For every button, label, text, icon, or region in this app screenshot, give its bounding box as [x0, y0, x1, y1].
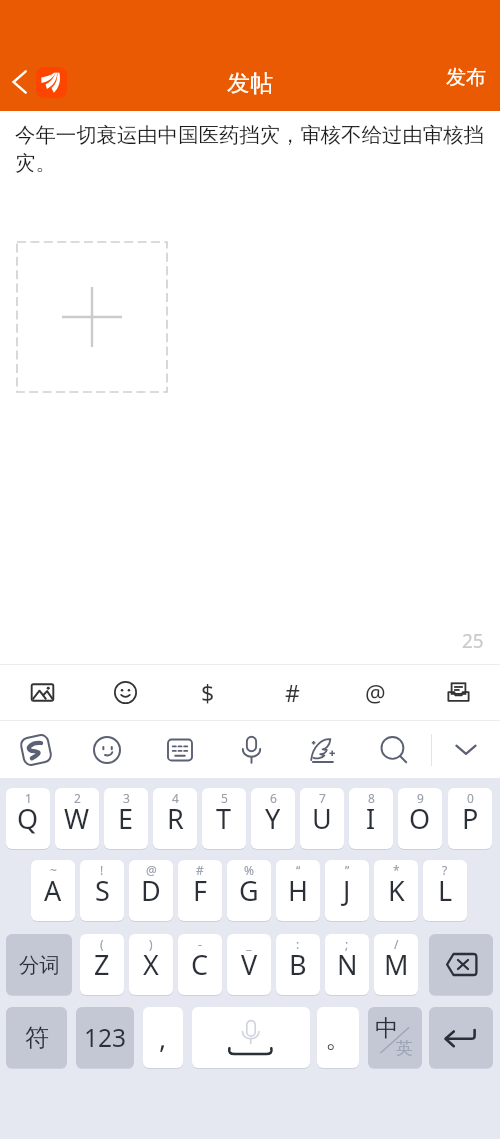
button[interactable]: 符 [6, 1007, 67, 1068]
button[interactable]: - [178, 934, 222, 995]
button[interactable]: % [227, 860, 271, 921]
button[interactable]: 5 [202, 788, 246, 849]
button[interactable]: 3 [104, 788, 148, 849]
button[interactable]: 0 [448, 788, 492, 849]
button[interactable]: App logo [36, 67, 67, 98]
staticText: M [384, 946, 409, 983]
staticText: 发布 [446, 65, 486, 90]
button[interactable]: Enter [429, 1007, 493, 1068]
staticText: P [462, 800, 479, 837]
button[interactable]: # [269, 664, 315, 721]
button[interactable]: Back [0, 61, 41, 103]
staticText: C [191, 946, 209, 983]
staticText: , [159, 1019, 167, 1056]
button[interactable]: / [374, 934, 418, 995]
staticText: * [393, 862, 400, 878]
staticText: ~ [50, 862, 57, 878]
staticText: I [366, 800, 376, 837]
staticText: U [312, 800, 332, 837]
button[interactable]: : [276, 934, 320, 995]
staticText: Q [17, 800, 39, 837]
button[interactable]: ! [80, 860, 124, 921]
button[interactable]: @ [352, 664, 398, 721]
button[interactable]: ? [423, 860, 467, 921]
button[interactable]: “ [276, 860, 320, 921]
staticText: T [216, 800, 232, 837]
button[interactable]: 123 [76, 1007, 134, 1068]
staticText: 7 [319, 790, 326, 806]
button[interactable]: Space [192, 1007, 310, 1068]
button[interactable]: 分词 [6, 934, 72, 995]
staticText: - [198, 936, 202, 952]
button[interactable]: # [178, 860, 222, 921]
button[interactable]: Hide keyboard [444, 721, 488, 778]
button[interactable]: Chinese English toggle [368, 1007, 422, 1068]
staticText: K [388, 872, 405, 909]
button[interactable]: 6 [251, 788, 295, 849]
staticText: G [239, 872, 259, 909]
button[interactable]: 7 [300, 788, 344, 849]
staticText: 4 [172, 790, 179, 806]
staticText: Y [265, 800, 281, 837]
staticText: W [64, 800, 90, 837]
button[interactable]: Drafts [435, 664, 481, 721]
button[interactable]: Emoji [85, 721, 129, 778]
staticText: 5 [221, 790, 228, 806]
staticText: # [196, 862, 204, 878]
staticText: 英 [396, 1038, 413, 1059]
button[interactable]: ” [325, 860, 369, 921]
button[interactable]: Voice input [229, 721, 273, 778]
staticText: ? [442, 862, 448, 878]
button[interactable]: 4 [153, 788, 197, 849]
staticText: 2 [74, 790, 81, 806]
button[interactable]: 。 [317, 1007, 359, 1068]
button[interactable]: 发布 [432, 62, 500, 98]
staticText: D [141, 872, 161, 909]
staticText: $ [201, 677, 215, 708]
staticText: ” [345, 862, 350, 878]
button[interactable]: Emoji [102, 664, 148, 721]
staticText: J [343, 872, 351, 909]
button[interactable]: 9 [398, 788, 442, 849]
staticText: _ [246, 936, 252, 952]
staticText: X [143, 946, 159, 983]
staticText: 1 [25, 790, 32, 806]
staticText: 123 [84, 1021, 127, 1054]
button[interactable]: Delete [429, 934, 493, 995]
staticText: 发帖 [227, 69, 273, 98]
staticText: V [241, 946, 258, 983]
button[interactable]: ; [325, 934, 369, 995]
staticText: B [289, 946, 307, 983]
staticText: : [296, 936, 300, 952]
staticText: @ [146, 862, 157, 878]
button[interactable]: Sogou input [14, 721, 58, 778]
staticText: S [95, 872, 110, 909]
button[interactable]: @ [129, 860, 173, 921]
staticText: / [394, 936, 399, 952]
staticText: H [288, 872, 309, 909]
staticText: # [285, 677, 300, 708]
button[interactable]: _ [227, 934, 271, 995]
button[interactable]: ) [129, 934, 173, 995]
button[interactable]: , [143, 1007, 183, 1068]
staticText: 6 [270, 790, 277, 806]
staticText: 。 [325, 1021, 352, 1055]
button[interactable]: ( [80, 934, 124, 995]
button[interactable]: Add photo [17, 242, 167, 392]
button[interactable]: * [374, 860, 418, 921]
staticText: 8 [368, 790, 375, 806]
button[interactable]: 1 [6, 788, 50, 849]
button[interactable]: 8 [349, 788, 393, 849]
staticText: 9 [417, 790, 424, 806]
button[interactable]: Add image [19, 664, 65, 721]
button[interactable]: ~ [31, 860, 75, 921]
staticText: F [193, 872, 208, 909]
staticText: “ [296, 862, 301, 878]
button[interactable]: Keyboard layout [158, 721, 202, 778]
staticText: R [167, 800, 184, 837]
staticText: Z [94, 946, 110, 983]
button[interactable]: Search [372, 721, 416, 778]
button[interactable]: $ [185, 664, 231, 721]
button[interactable]: 2 [55, 788, 99, 849]
button[interactable]: Handwriting [300, 721, 344, 778]
